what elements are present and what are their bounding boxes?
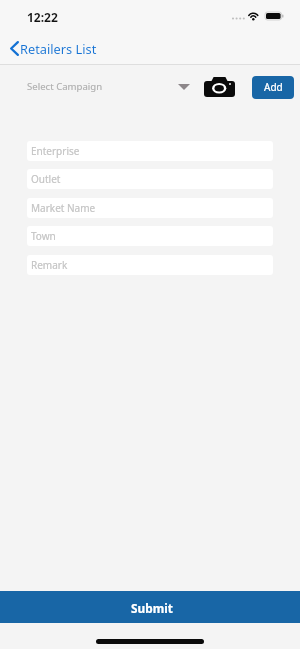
button[interactable]: Market Name [27,198,273,218]
staticText: Enterprise [31,144,80,158]
staticText: Retailers List [20,40,97,57]
staticText: Remark [31,258,68,272]
button[interactable]: Add [252,76,294,99]
button[interactable]: Enterprise [27,141,273,161]
button[interactable]: Outlet [27,169,273,189]
staticText: Add [264,80,283,94]
button[interactable]: Open campaign dropdown [172,78,196,96]
button[interactable]: Retailers List [6,37,100,59]
staticText: Submit [131,600,173,616]
button[interactable]: Town [27,226,273,246]
staticText: 12:22 [27,9,58,25]
staticText: Market Name [31,201,96,215]
staticText: Town [31,229,56,243]
staticText: Select Campaign [27,80,103,93]
button[interactable]: Remark [27,255,273,275]
button[interactable]: Take photo [204,77,235,97]
staticText: Outlet [31,172,61,186]
button[interactable]: Submit [0,591,300,623]
